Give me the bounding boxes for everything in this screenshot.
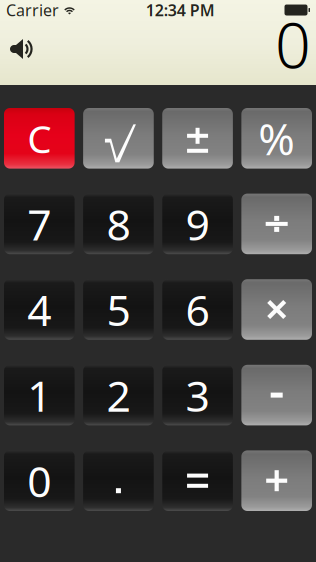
button[interactable]: 4: [4, 279, 75, 340]
staticText: 1: [27, 367, 51, 423]
button[interactable]: Multiply: [241, 279, 312, 340]
staticText: %: [258, 109, 295, 167]
staticText: 3: [186, 367, 210, 423]
staticText: 4: [27, 281, 51, 338]
staticText: 0: [27, 452, 51, 509]
staticText: 8: [106, 196, 130, 252]
button[interactable]: 5: [83, 279, 154, 340]
staticText: 5: [106, 281, 130, 338]
button[interactable]: Plus: [241, 450, 312, 511]
button[interactable]: Equals: [162, 450, 233, 511]
button[interactable]: Divide: [241, 194, 312, 254]
staticText: 9: [186, 196, 210, 252]
button[interactable]: 3: [162, 365, 233, 425]
button[interactable]: 6: [162, 279, 233, 340]
button[interactable]: Percent: [241, 108, 312, 169]
staticText: 12:34 PM: [146, 0, 215, 21]
button[interactable]: Decimal point: [83, 450, 154, 511]
button[interactable]: Clear: [4, 108, 75, 169]
button[interactable]: 2: [83, 365, 154, 425]
staticText: 0: [275, 2, 311, 86]
staticText: Carrier: [6, 0, 59, 21]
staticText: 7: [27, 196, 51, 252]
button[interactable]: 9: [162, 194, 233, 254]
staticText: 2: [106, 367, 130, 423]
button[interactable]: Plus or minus: [162, 108, 233, 169]
button[interactable]: Minus: [241, 365, 312, 425]
staticText: 6: [186, 281, 210, 338]
button[interactable]: 0: [4, 450, 75, 511]
button[interactable]: 7: [4, 194, 75, 254]
button[interactable]: Square root: [83, 108, 154, 169]
button[interactable]: 1: [4, 365, 75, 425]
button[interactable]: 8: [83, 194, 154, 254]
staticText: C: [27, 113, 51, 164]
